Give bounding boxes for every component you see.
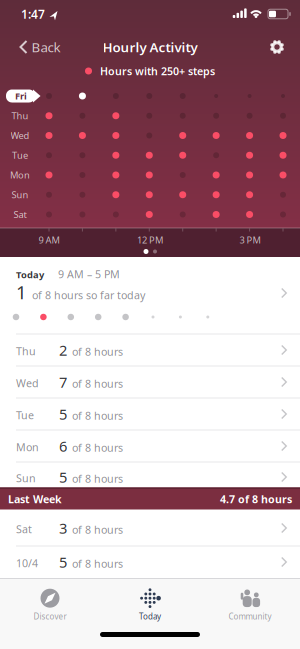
staticText: of 8 hours: [72, 471, 123, 486]
staticText: of 8 hours: [72, 556, 123, 571]
staticText: 3: [59, 518, 67, 538]
staticText: Community: [228, 611, 271, 622]
button[interactable]: Sun: [0, 461, 300, 493]
staticText: of 8 hours: [72, 522, 123, 537]
button[interactable]: 10/4: [0, 546, 300, 578]
staticText: Hours with 250+ steps: [100, 64, 215, 78]
staticText: Today: [139, 611, 161, 622]
staticText: Thu: [11, 110, 28, 122]
staticText: 9 AM: [38, 234, 59, 246]
staticText: Discover: [33, 611, 66, 622]
staticText: Last Week: [8, 492, 62, 506]
button[interactable]: Tue: [0, 398, 300, 430]
staticText: of 8 hours so far today: [32, 288, 145, 302]
staticText: Mon: [10, 169, 30, 181]
button[interactable]: Wed: [0, 366, 300, 398]
staticText: Sun: [11, 189, 28, 201]
staticText: 5: [59, 467, 67, 487]
staticText: of 8 hours: [72, 408, 123, 423]
staticText: of 8 hours: [72, 440, 123, 455]
staticText: Today: [16, 268, 44, 281]
staticText: Sat: [16, 522, 32, 536]
staticText: Hourly Activity: [102, 38, 197, 56]
staticText: Wed: [16, 376, 39, 390]
button[interactable]: Settings: [262, 32, 292, 62]
staticText: 7: [59, 372, 67, 392]
staticText: 2: [59, 340, 67, 360]
staticText: Mon: [16, 440, 39, 454]
staticText: Fri: [15, 90, 27, 102]
staticText: of 8 hours: [72, 344, 123, 359]
button[interactable]: Discover: [5, 583, 95, 627]
staticText: 9 AM – 5 PM: [58, 267, 120, 281]
button[interactable]: Today: [0, 256, 300, 334]
staticText: 1: [16, 280, 27, 304]
staticText: 6: [59, 436, 67, 456]
staticText: Sat: [13, 208, 26, 221]
staticText: Tue: [16, 408, 34, 422]
staticText: Thu: [16, 344, 36, 358]
button[interactable]: Community: [205, 583, 295, 627]
staticText: 10/4: [16, 556, 38, 570]
staticText: 1:47: [21, 6, 45, 22]
staticText: Back: [31, 38, 60, 56]
button[interactable]: Sat: [0, 512, 300, 544]
button[interactable]: Mon: [0, 430, 300, 462]
staticText: 3 PM: [239, 234, 260, 246]
staticText: Sun: [16, 471, 36, 485]
staticText: 12 PM: [137, 234, 163, 246]
staticText: Tue: [12, 149, 28, 161]
button[interactable]: Thu: [0, 334, 300, 366]
staticText: 4.7 of 8 hours: [220, 492, 292, 506]
staticText: of 8 hours: [72, 376, 123, 391]
staticText: Wed: [10, 129, 29, 142]
staticText: 5: [59, 552, 67, 572]
staticText: 5: [59, 404, 67, 424]
button[interactable]: Today: [105, 583, 195, 627]
button[interactable]: Back: [10, 32, 70, 62]
